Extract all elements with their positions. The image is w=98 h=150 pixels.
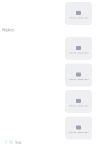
staticText: Preview unavailable bbox=[68, 51, 88, 54]
staticText: Share bbox=[15, 141, 22, 145]
staticText: Preview unavailable bbox=[68, 104, 88, 107]
button[interactable]: Attachment, preview unavailable bbox=[65, 37, 92, 60]
button[interactable]: 16 bbox=[9, 141, 13, 145]
button[interactable]: 1 bbox=[5, 141, 7, 145]
staticText: Preview unavailable bbox=[68, 16, 88, 19]
button[interactable]: Attachment, preview unavailable bbox=[65, 63, 92, 86]
staticText: Replies bbox=[2, 27, 14, 32]
staticText: 16 bbox=[9, 141, 13, 145]
button[interactable]: Attachment, preview unavailable bbox=[65, 90, 92, 113]
staticText: Preview unavailable bbox=[68, 130, 88, 134]
button[interactable]: Share bbox=[15, 141, 22, 145]
staticText: Preview unavailable bbox=[68, 77, 88, 81]
button[interactable]: Attachment, preview unavailable bbox=[65, 116, 92, 139]
staticText: 1 bbox=[5, 141, 7, 145]
button[interactable]: Attachment, preview unavailable bbox=[65, 2, 92, 25]
